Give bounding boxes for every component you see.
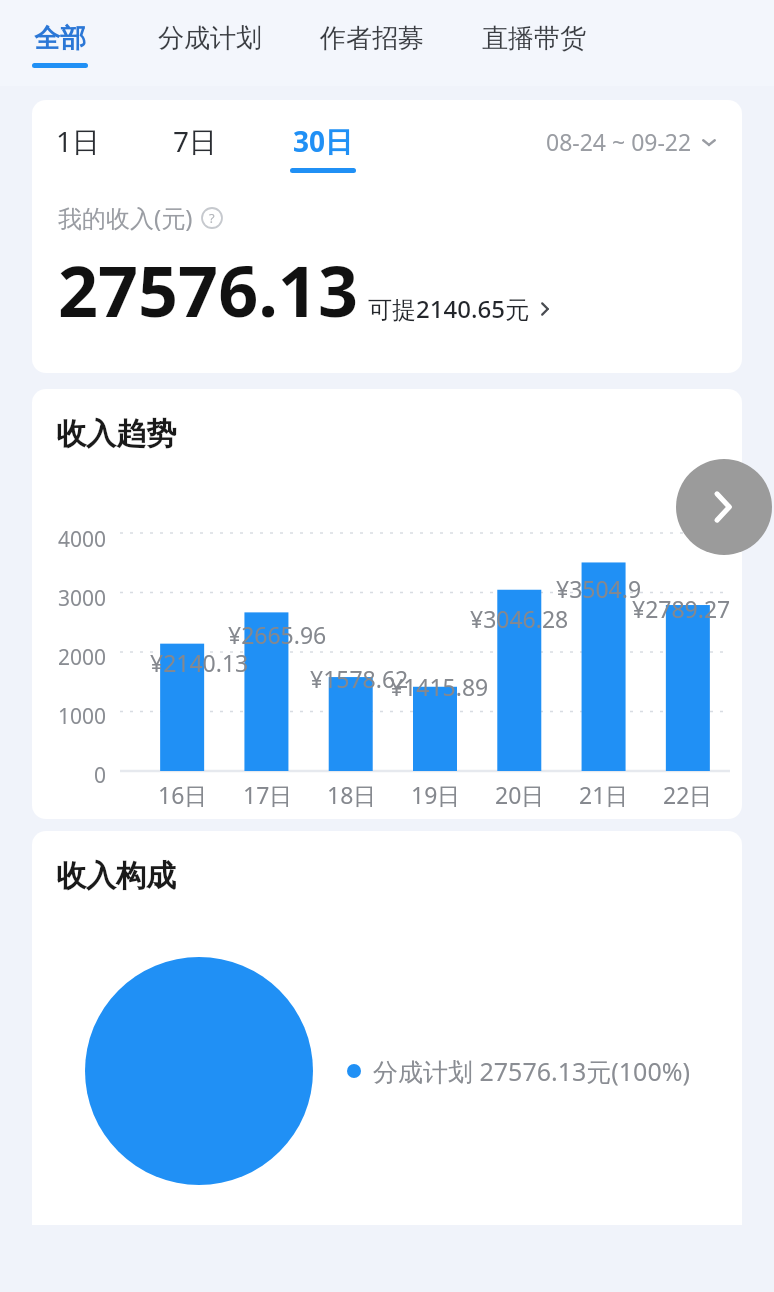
- staticText: 4000: [57, 525, 106, 554]
- button[interactable]: 7日: [173, 122, 218, 168]
- button[interactable]: 1日: [56, 122, 101, 168]
- button[interactable]: 帮助说明: [201, 207, 223, 229]
- staticText: 18日: [327, 779, 377, 810]
- button[interactable]: 分成计划: [158, 0, 262, 63]
- staticText: 27576.13: [58, 242, 358, 337]
- staticText: 19日: [411, 779, 461, 810]
- staticText: 17日: [243, 779, 293, 810]
- staticText: 0: [93, 761, 106, 790]
- staticText: 20日: [495, 779, 545, 810]
- staticText: 08-24 ~ 09-22: [546, 126, 692, 157]
- button[interactable]: 全部: [32, 0, 88, 68]
- staticText: 收入构成: [56, 857, 176, 895]
- staticText: ¥3504.9: [556, 573, 642, 604]
- staticText: 直播带货: [482, 22, 586, 55]
- button[interactable]: 下一页: [676, 459, 772, 555]
- staticText: ¥2665.96: [228, 619, 327, 650]
- staticText: 分成计划: [158, 22, 262, 55]
- button[interactable]: 直播带货: [482, 0, 586, 63]
- staticText: ¥3046.28: [470, 603, 569, 634]
- button[interactable]: 分成计划 27576.13元(100%): [347, 1054, 690, 1088]
- button[interactable]: 30日: [290, 122, 356, 173]
- staticText: 2000: [57, 643, 106, 672]
- staticText: 3000: [57, 584, 106, 613]
- staticText: 作者招募: [320, 22, 424, 55]
- staticText: 1日: [56, 122, 101, 160]
- button[interactable]: 作者招募: [320, 0, 424, 63]
- staticText: 21日: [579, 779, 629, 810]
- staticText: ¥1415.89: [390, 671, 489, 702]
- staticText: ¥2789.27: [632, 593, 731, 624]
- staticText: 22日: [663, 779, 713, 810]
- staticText: 可提2140.65元: [368, 292, 529, 325]
- staticText: 分成计划 27576.13元(100%): [373, 1054, 690, 1088]
- staticText: 全部: [34, 22, 86, 55]
- button[interactable]: 08-24 ~ 09-22: [546, 126, 718, 157]
- staticText: ?: [209, 209, 215, 227]
- staticText: 1000: [57, 702, 106, 731]
- staticText: ¥1578.62: [310, 663, 409, 694]
- staticText: 30日: [293, 122, 354, 160]
- staticText: 我的收入(元): [58, 201, 193, 234]
- staticText: 16日: [158, 779, 208, 810]
- staticText: ¥2140.13: [150, 647, 249, 678]
- staticText: 收入趋势: [56, 415, 176, 453]
- button[interactable]: 可提2140.65元: [368, 292, 555, 325]
- staticText: 7日: [173, 122, 218, 160]
